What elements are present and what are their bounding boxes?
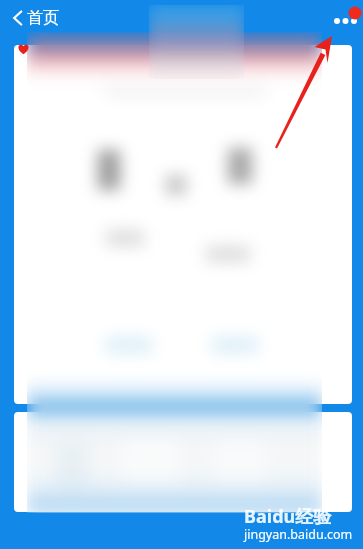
button[interactable]: [14, 45, 352, 404]
button[interactable]: More options: [330, 6, 360, 34]
staticText: Baidu经验: [244, 504, 332, 529]
button[interactable]: 首页: [7, 5, 64, 31]
staticText: 首页: [27, 8, 59, 28]
staticText: jingyan.baidu.com: [244, 526, 353, 543]
button[interactable]: [14, 412, 352, 512]
